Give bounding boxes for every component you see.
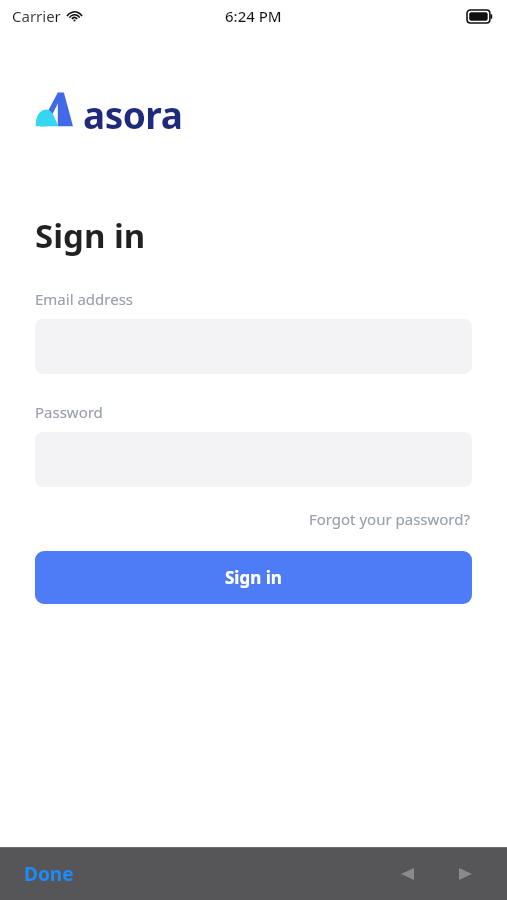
staticText: Carrier (12, 6, 61, 26)
staticText: Email address (35, 289, 134, 309)
button[interactable]: Sign in (35, 551, 472, 604)
staticText: Password (35, 402, 103, 422)
staticText: Sign in (35, 213, 146, 258)
button[interactable]: Forgot your password? (306, 507, 472, 531)
button[interactable]: Previous field (387, 854, 427, 894)
staticText: asora (83, 89, 183, 129)
button[interactable]: Next field (445, 854, 485, 894)
staticText: 6:24 PM (225, 6, 282, 26)
staticText: Sign in (225, 566, 282, 589)
button[interactable]: Done (20, 857, 78, 891)
